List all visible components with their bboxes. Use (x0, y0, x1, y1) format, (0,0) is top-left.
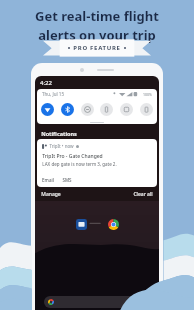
staticText: TripIt Pro - Gate Changed (42, 153, 103, 160)
button[interactable]: Manage (41, 191, 61, 198)
button[interactable]: Battery saver (140, 103, 153, 116)
staticText: alerts on your trip (38, 26, 156, 44)
staticText: Get real-time flight (35, 7, 159, 25)
staticText: Thu, Jul 15 (42, 91, 64, 97)
staticText: SMS (62, 177, 72, 183)
button[interactable]: Search (44, 296, 151, 308)
staticText: PRO FEATURE (73, 44, 121, 52)
button[interactable]: SMS (62, 177, 72, 183)
staticText: Clear all (133, 191, 153, 198)
button[interactable]: Flashlight (100, 103, 113, 116)
staticText: 100% (143, 92, 152, 97)
staticText: Email (42, 177, 54, 183)
staticText: Notifications (41, 130, 77, 137)
staticText: 4:22 (40, 79, 52, 87)
button[interactable]: Bluetooth (61, 103, 74, 116)
button[interactable]: Email (42, 177, 54, 183)
button[interactable]: Clear all (133, 191, 153, 198)
button[interactable]: Auto rotate (120, 103, 133, 116)
staticText: TripIt • now (49, 143, 74, 149)
button[interactable]: Chrome (108, 219, 119, 230)
button[interactable]: Do not disturb (81, 103, 94, 116)
staticText: Manage (41, 191, 61, 198)
staticText: LAX dep gate is now term 3, gate 2. (42, 161, 117, 167)
button[interactable]: Messages (76, 219, 87, 230)
button[interactable]: Wi-Fi (41, 103, 54, 116)
button[interactable]: TripIt • now (37, 139, 157, 187)
